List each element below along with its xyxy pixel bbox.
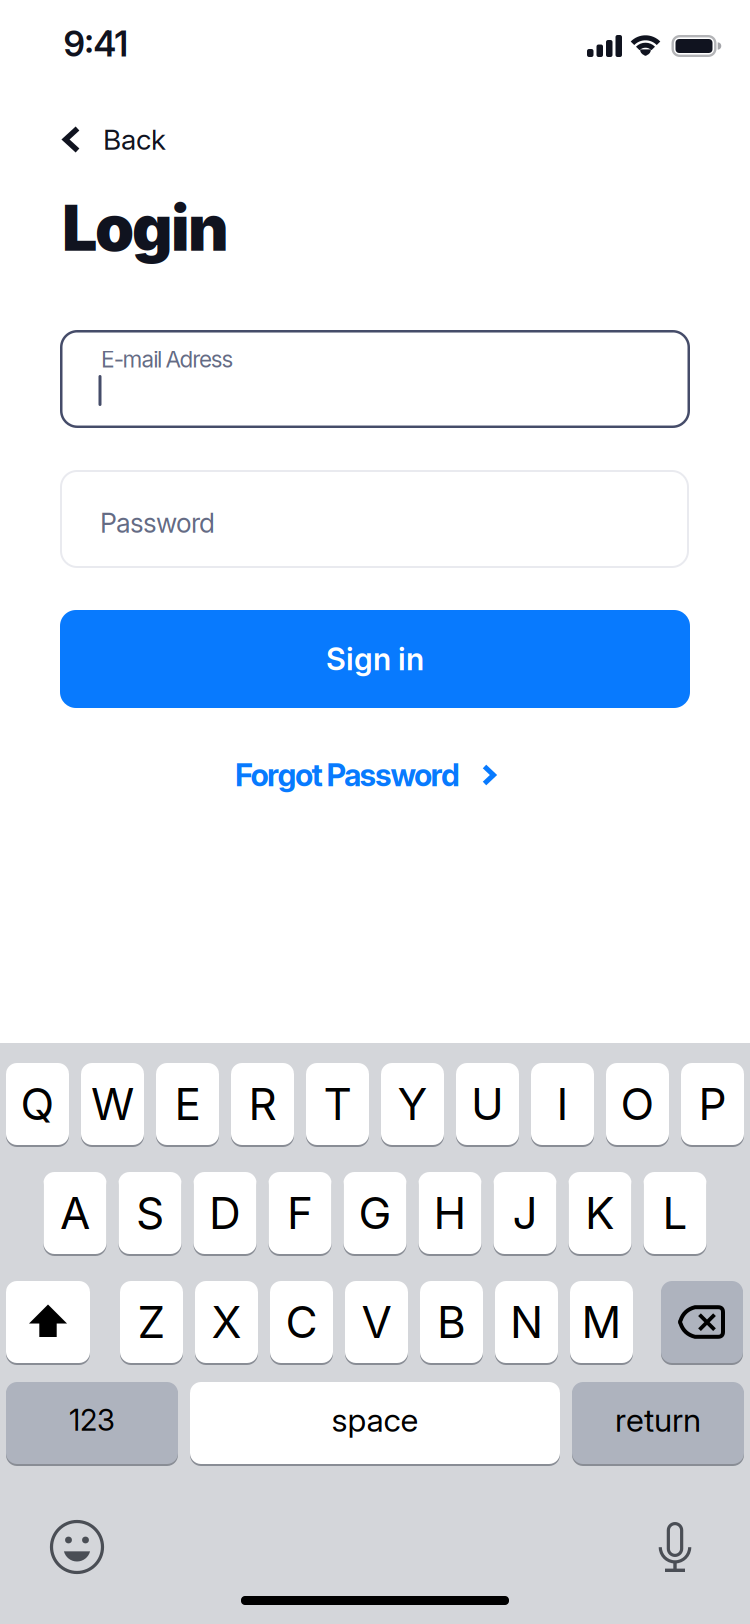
button[interactable]: K xyxy=(568,1171,631,1255)
button[interactable]: E xyxy=(156,1062,219,1146)
button[interactable]: V xyxy=(345,1280,408,1364)
staticText: G xyxy=(358,1187,391,1239)
staticText: 123 xyxy=(69,1403,115,1437)
button[interactable]: M xyxy=(570,1280,633,1364)
staticText: T xyxy=(323,1078,351,1130)
staticText: K xyxy=(585,1187,615,1239)
button[interactable]: U xyxy=(456,1062,519,1146)
staticText: H xyxy=(433,1187,466,1239)
button[interactable]: Delete xyxy=(661,1280,743,1364)
button[interactable]: E-mail Adress xyxy=(60,330,690,428)
staticText: Sign in xyxy=(326,641,424,677)
button[interactable]: X xyxy=(195,1280,258,1364)
staticText: F xyxy=(287,1187,313,1239)
button[interactable]: Emoji xyxy=(50,1520,104,1574)
staticText: S xyxy=(136,1187,164,1239)
staticText: P xyxy=(698,1078,726,1130)
staticText: Y xyxy=(397,1078,427,1130)
button[interactable]: A xyxy=(43,1171,106,1255)
staticText: J xyxy=(512,1187,537,1239)
button[interactable]: Back xyxy=(64,123,174,156)
staticText: D xyxy=(209,1187,241,1239)
button[interactable]: Shift xyxy=(6,1280,90,1364)
staticText: W xyxy=(91,1078,134,1130)
button[interactable]: O xyxy=(606,1062,669,1146)
button[interactable]: L xyxy=(643,1171,706,1255)
button[interactable]: S xyxy=(118,1171,181,1255)
button[interactable]: Password xyxy=(60,470,689,568)
button[interactable]: N xyxy=(495,1280,558,1364)
button[interactable]: R xyxy=(231,1062,294,1146)
button[interactable]: Numbers xyxy=(6,1381,178,1465)
staticText: E-mail Adress xyxy=(101,346,234,373)
button[interactable]: J xyxy=(493,1171,556,1255)
staticText: N xyxy=(510,1296,543,1348)
staticText: E xyxy=(174,1078,200,1130)
staticText: Forgot Password xyxy=(235,757,460,793)
button[interactable]: Z xyxy=(120,1280,183,1364)
button[interactable]: T xyxy=(306,1062,369,1146)
staticText: X xyxy=(211,1296,241,1348)
staticText: return xyxy=(615,1401,701,1439)
staticText: O xyxy=(620,1078,654,1130)
button[interactable]: G xyxy=(343,1171,406,1255)
button[interactable]: return xyxy=(572,1381,744,1465)
staticText: B xyxy=(437,1296,466,1348)
button[interactable]: I xyxy=(531,1062,594,1146)
staticText: 9:41 xyxy=(63,24,128,64)
staticText: C xyxy=(285,1296,317,1348)
staticText: M xyxy=(581,1296,621,1348)
button[interactable]: Sign in xyxy=(60,610,690,708)
button[interactable]: F xyxy=(268,1171,331,1255)
staticText: Password xyxy=(100,507,215,539)
button[interactable]: space xyxy=(190,1381,560,1465)
button[interactable]: W xyxy=(81,1062,144,1146)
staticText: Q xyxy=(20,1078,54,1130)
staticText: U xyxy=(471,1078,504,1130)
staticText: L xyxy=(662,1187,687,1239)
staticText: A xyxy=(60,1187,90,1239)
button[interactable]: H xyxy=(418,1171,481,1255)
staticText: space xyxy=(331,1401,418,1439)
staticText: Back xyxy=(103,123,166,156)
button[interactable]: Forgot Password xyxy=(235,757,496,793)
staticText: Z xyxy=(137,1296,165,1348)
button[interactable]: B xyxy=(420,1280,483,1364)
staticText: R xyxy=(248,1078,276,1130)
staticText: I xyxy=(556,1078,568,1130)
button[interactable]: D xyxy=(193,1171,256,1255)
button[interactable]: Dictation xyxy=(660,1522,690,1572)
button[interactable]: C xyxy=(270,1280,333,1364)
staticText: V xyxy=(361,1296,391,1348)
button[interactable]: Q xyxy=(6,1062,69,1146)
button[interactable]: Y xyxy=(381,1062,444,1146)
button[interactable]: P xyxy=(681,1062,744,1146)
staticText: Login xyxy=(62,191,229,265)
